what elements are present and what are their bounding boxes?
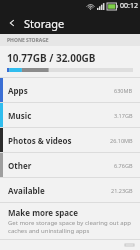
staticText: 00:12 [120, 1, 138, 11]
staticText: 6.76GB [114, 162, 133, 169]
staticText: 10.77GB / 32.00GB [7, 51, 96, 65]
staticText: Apps [8, 85, 28, 96]
button[interactable]: Back [0, 12, 140, 34]
button[interactable]: Make more space [0, 203, 140, 239]
staticText: 26.10MB [110, 137, 133, 144]
button[interactable]: Phone storage encryption toggle [125, 244, 134, 246]
staticText: 21.23GB [111, 187, 133, 194]
staticText: Other [8, 160, 32, 171]
button[interactable]: Back [0, 12, 24, 34]
staticText: Storage [24, 16, 65, 31]
staticText: Photos & videos [8, 135, 72, 146]
button[interactable]: Apps [0, 78, 140, 102]
staticText: 630MB [114, 87, 133, 94]
staticText: Available [8, 185, 45, 196]
staticText: PHONE STORAGE [7, 37, 49, 44]
button[interactable]: Available [0, 178, 140, 202]
button[interactable]: Phone storage encryption [0, 240, 140, 250]
staticText: Make more space [8, 207, 78, 218]
button[interactable]: Other [0, 153, 140, 177]
button[interactable]: Music [0, 103, 140, 127]
button[interactable]: Photos & videos [0, 128, 140, 152]
staticText: Get more storage space by clearing out a… [8, 219, 134, 235]
staticText: Music [8, 110, 32, 121]
staticText: 3.17GB [114, 112, 133, 119]
